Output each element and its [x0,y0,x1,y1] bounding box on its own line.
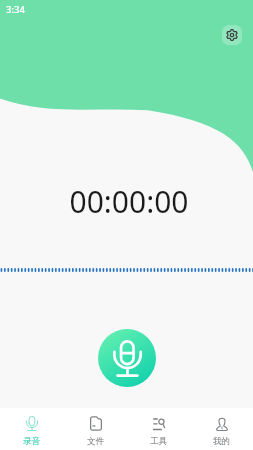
button[interactable]: Settings [222,25,242,45]
button[interactable]: Record [98,329,156,387]
staticText: 工具 [150,436,168,447]
button[interactable]: 工具 [127,408,190,450]
staticText: 文件 [87,436,105,447]
button[interactable]: 我的 [190,408,253,450]
staticText: 3:34 [6,3,25,16]
staticText: 我的 [213,436,231,447]
button[interactable]: 录音 [0,408,64,450]
staticText: 录音 [23,436,41,447]
staticText: 00:00:00 [69,181,189,222]
button[interactable]: 文件 [64,408,127,450]
